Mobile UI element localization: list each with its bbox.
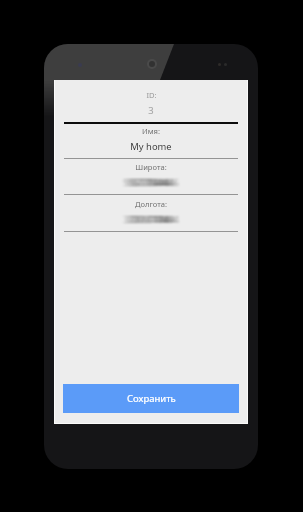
staticText: 55.750446 (134, 176, 180, 189)
staticText: 55.750446 (127, 176, 173, 189)
staticText: ID: (146, 90, 157, 100)
staticText: Сохранить (127, 392, 176, 405)
staticText: 55.750446 (133, 176, 179, 189)
button[interactable]: 3 (55, 104, 247, 117)
staticText: 37.617494 (127, 213, 173, 226)
staticText: 37.617494 (131, 213, 177, 226)
staticText: 37.617494 (130, 213, 176, 226)
button[interactable]: 37.617494 (55, 213, 247, 226)
staticText: 3 (148, 104, 154, 117)
staticText: 37.617494 (133, 213, 179, 226)
staticText: Широта: (135, 162, 167, 172)
staticText: My home (130, 140, 172, 153)
button[interactable]: 55.750446 (55, 176, 247, 189)
staticText: 55.750446 (125, 176, 171, 189)
button[interactable]: My home (55, 140, 247, 153)
staticText: Имя: (142, 126, 160, 136)
button[interactable]: Широта: (55, 161, 247, 173)
button[interactable]: ID: (55, 89, 247, 101)
button[interactable]: Долгота: (55, 198, 247, 210)
staticText: 55.750446 (128, 176, 174, 189)
staticText: 37.617494 (125, 213, 171, 226)
staticText: 37.617494 (122, 213, 168, 226)
staticText: Долгота: (135, 199, 167, 209)
staticText: 37.617494 (134, 213, 180, 226)
staticText: 55.750446 (122, 176, 168, 189)
button[interactable]: Имя: (55, 125, 247, 137)
staticText: 55.750446 (131, 176, 177, 189)
staticText: 37.617494 (124, 213, 170, 226)
staticText: 55.750446 (130, 176, 176, 189)
staticText: 37.617494 (128, 213, 174, 226)
button[interactable]: Сохранить (63, 384, 239, 413)
staticText: 55.750446 (124, 176, 170, 189)
